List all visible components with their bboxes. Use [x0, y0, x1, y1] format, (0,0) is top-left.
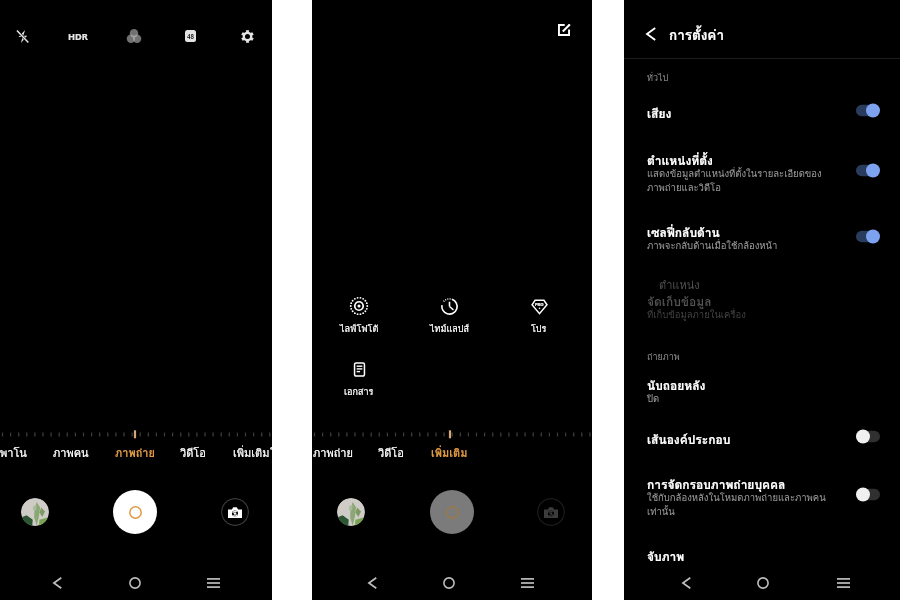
staticText: วิดีโอ: [378, 444, 404, 460]
other: Back: [638, 21, 664, 47]
staticText: ทั่วไป: [647, 71, 669, 85]
button[interactable]: Recent apps: [196, 566, 230, 600]
button[interactable]: Filters: [120, 22, 148, 50]
staticText: การตั้งค่า: [669, 24, 724, 45]
button[interactable]: วิดีโอ: [167, 444, 219, 460]
staticText: วิดีโอ: [180, 444, 206, 460]
button[interactable]: เอกสาร: [323, 358, 395, 399]
button[interactable]: Flash off: [8, 22, 36, 50]
staticText: HDR: [68, 30, 88, 43]
staticText: ที่เก็บข้อมูลภายในเครื่อง: [647, 307, 746, 322]
button[interactable]: ไทม์แลปส์: [413, 295, 485, 336]
staticText: 48: [187, 32, 195, 40]
button[interactable]: PRO: [503, 295, 575, 336]
staticText: เพิ่มเติม: [431, 444, 468, 460]
button[interactable]: ภาพคน: [312, 444, 315, 460]
staticText: PRO: [535, 302, 544, 308]
button[interactable]: การจัดกรอบภาพถ่ายบุคคล: [647, 475, 786, 494]
button[interactable]: Switch camera: [221, 498, 249, 526]
button[interactable]: Shutter: [430, 490, 474, 534]
staticText: โปร: [270, 444, 272, 460]
staticText: ภาพคน: [53, 444, 89, 460]
button[interactable]: ตำแหน่งที่ตั้ง: [647, 151, 713, 170]
staticText: เส้นองค์ประกอบ: [647, 430, 731, 449]
button[interactable]: เพิ่มเติม: [423, 444, 475, 460]
staticText: เซลฟี่กลับด้าน: [647, 223, 720, 242]
staticText: แสดงข้อมูลตำแหน่งที่ตั้งในรายละเอียดของ …: [647, 166, 822, 195]
button[interactable]: Recent apps: [510, 566, 544, 600]
button[interactable]: เสียง: [647, 104, 672, 123]
button[interactable]: Back: [638, 14, 724, 54]
button[interactable]: HDR: [60, 22, 96, 50]
button[interactable]: เส้นองค์ประกอบ: [647, 430, 731, 449]
staticText: นับถอยหลัง: [647, 376, 706, 395]
button[interactable]: Gallery: [337, 498, 365, 526]
button[interactable]: [846, 480, 890, 508]
staticText: เอกสาร: [344, 385, 374, 399]
staticText: ภาพถ่าย: [115, 444, 155, 460]
button[interactable]: Recent apps: [826, 566, 860, 600]
staticText: ตำแหน่งที่ตั้ง: [647, 151, 713, 170]
button[interactable]: ภาพถ่าย: [312, 444, 359, 460]
button[interactable]: วิดีโอ: [365, 444, 417, 460]
button[interactable]: [846, 156, 890, 184]
button[interactable]: นับถอยหลัง: [647, 376, 706, 395]
staticText: ไทม์แลปส์: [430, 322, 469, 336]
staticText: ภาพคน: [312, 444, 315, 460]
button[interactable]: Gallery: [21, 498, 49, 526]
staticText: เสียง: [647, 104, 672, 123]
button[interactable]: Back: [669, 566, 703, 600]
staticText: พาโน: [0, 444, 27, 460]
staticText: ภาพจะกลับด้านเมื่อใช้กล้องหน้า: [647, 238, 778, 253]
button[interactable]: Home: [746, 566, 780, 600]
button[interactable]: โปร: [270, 444, 272, 460]
staticText: ถ่ายภาพ: [647, 350, 680, 364]
staticText: เพิ่มเติม: [233, 444, 270, 460]
staticText: การจัดกรอบภาพถ่ายบุคคล: [647, 475, 786, 494]
button[interactable]: Back: [40, 566, 74, 600]
staticText: ตำแหน่ง: [659, 276, 700, 293]
button[interactable]: ภาพถ่าย: [109, 444, 161, 460]
button[interactable]: เซลฟี่กลับด้าน: [647, 223, 720, 242]
staticText: จัดเก็บข้อมูล: [647, 292, 712, 311]
button[interactable]: เพิ่มเติม: [225, 444, 272, 460]
button[interactable]: Home: [432, 566, 466, 600]
button[interactable]: Shutter: [113, 490, 157, 534]
button[interactable]: [846, 222, 890, 250]
staticText: ไลฟ์โฟโต้: [340, 322, 379, 336]
staticText: ภาพถ่าย: [313, 444, 353, 460]
button[interactable]: Back: [355, 566, 389, 600]
button[interactable]: Home: [118, 566, 152, 600]
button[interactable]: จับภาพ: [647, 547, 685, 566]
button[interactable]: [846, 96, 890, 124]
button[interactable]: ภาพคน: [45, 444, 97, 460]
button[interactable]: Settings: [233, 22, 261, 50]
staticText: ใช้กับกล้องหลังในโหมดภาพถ่ายและภาพคน เท่…: [647, 490, 826, 519]
staticText: ปิด: [647, 391, 660, 406]
button[interactable]: 48 MP: [176, 22, 204, 50]
button[interactable]: ไลฟ์โฟโต้: [323, 295, 395, 336]
button[interactable]: Edit modes: [550, 16, 578, 44]
staticText: จับภาพ: [647, 547, 685, 566]
button[interactable]: [846, 422, 890, 450]
staticText: โปร: [531, 322, 547, 336]
button[interactable]: พาโน: [0, 444, 39, 460]
button[interactable]: Switch camera: [537, 498, 565, 526]
